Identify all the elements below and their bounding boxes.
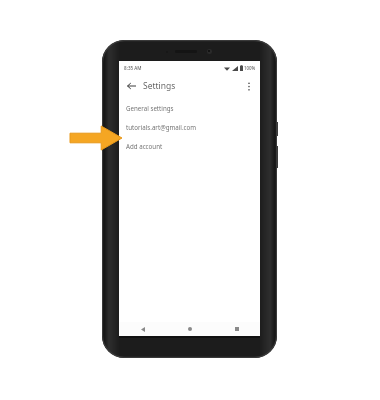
button[interactable]: Back — [119, 322, 166, 336]
button[interactable]: Back — [123, 78, 139, 94]
staticText: tutorials.art@gmail.com — [126, 123, 197, 131]
staticText: 8:35 AM — [124, 65, 142, 71]
button[interactable]: More options — [241, 78, 257, 94]
button[interactable]: General settings — [119, 98, 260, 117]
staticText: Add account — [126, 142, 163, 150]
staticText: Settings — [143, 80, 176, 92]
button[interactable]: Add account — [119, 136, 260, 155]
staticText: 100% — [244, 65, 256, 71]
button[interactable]: tutorials.art@gmail.com — [119, 117, 260, 136]
other: Pointer arrow to Add account — [70, 126, 122, 150]
button[interactable]: Home — [166, 322, 213, 336]
button[interactable]: Recent apps — [213, 322, 260, 336]
staticText: General settings — [126, 104, 174, 112]
